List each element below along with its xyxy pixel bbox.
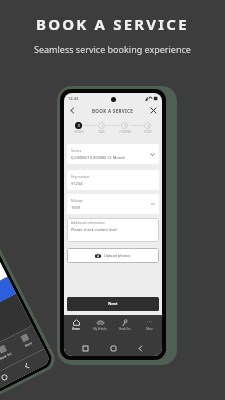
button[interactable]: 4 xyxy=(139,122,156,134)
staticText: Reg number xyxy=(71,175,90,179)
staticText: 91234 xyxy=(71,181,83,186)
staticText: Next xyxy=(108,301,118,307)
button[interactable]: Back xyxy=(68,106,77,115)
button[interactable]: Home xyxy=(64,315,88,341)
staticText: Home xyxy=(72,327,80,331)
button[interactable]: Service xyxy=(67,144,159,164)
staticText: DATE xyxy=(98,130,105,134)
staticText: More xyxy=(146,327,153,331)
staticText: More xyxy=(24,341,33,348)
button[interactable]: 2 xyxy=(93,122,110,134)
staticText: Please check coolant level xyxy=(71,227,117,232)
staticText: Service xyxy=(71,149,82,153)
button[interactable]: More xyxy=(137,315,162,341)
staticText: mi xyxy=(151,202,155,206)
button[interactable]: Next xyxy=(67,297,159,311)
staticText: Mileage xyxy=(71,199,83,203)
staticText: BOOK A SERVICE xyxy=(36,14,189,34)
button[interactable]: 1 xyxy=(70,122,87,134)
staticText: DETAILS xyxy=(74,130,84,134)
button[interactable]: Mileage xyxy=(67,194,159,214)
button[interactable]: Upload photos xyxy=(67,248,159,263)
staticText: DONE xyxy=(144,130,152,134)
button[interactable]: Back xyxy=(135,343,146,354)
staticText: BOOK A SERVICE xyxy=(92,108,134,114)
staticText: Book Svc xyxy=(119,327,131,331)
button[interactable]: Home xyxy=(108,343,119,354)
button[interactable]: My Vehicle xyxy=(88,315,112,341)
staticText: CONFIRM xyxy=(119,130,131,134)
staticText: 4 xyxy=(147,124,149,128)
staticText: My Vehicle xyxy=(93,327,107,331)
staticText: 2 xyxy=(101,124,103,128)
button[interactable]: Recent apps xyxy=(80,343,91,354)
button[interactable]: Additional information xyxy=(67,218,159,242)
staticText: 12:43 xyxy=(68,96,79,101)
button[interactable]: Book Svc xyxy=(112,315,137,341)
staticText: 1 xyxy=(78,124,80,128)
staticText: Seamless service booking experience xyxy=(34,43,191,55)
staticText: Book Svc xyxy=(0,351,13,361)
button[interactable]: Close xyxy=(149,106,158,115)
staticText: Upload photos xyxy=(104,253,131,258)
button[interactable]: Reg number xyxy=(67,170,159,190)
button[interactable]: 3 xyxy=(116,122,133,134)
staticText: Additional information xyxy=(71,221,105,225)
staticText: 6,000Mi/10,000KM 12 Month xyxy=(71,155,126,160)
staticText: 3 xyxy=(124,124,126,128)
staticText: 1569 xyxy=(71,205,81,210)
